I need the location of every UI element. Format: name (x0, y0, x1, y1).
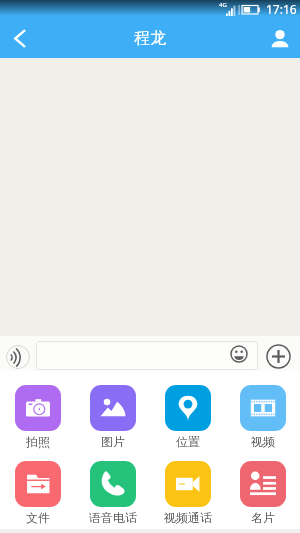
button[interactable]: 视频 (225, 385, 300, 449)
staticText: 视频通话 (164, 510, 212, 525)
staticText: 4G (219, 1, 227, 9)
staticText: 视频 (251, 434, 275, 449)
button[interactable] (36, 341, 258, 370)
staticText: 程龙 (134, 28, 166, 48)
button[interactable]: Voice input (6, 345, 30, 369)
staticText: 17:16 (266, 1, 297, 17)
button[interactable]: Emoji (229, 344, 249, 364)
button[interactable]: 视频通话 (150, 461, 225, 525)
staticText: 语音电话 (89, 510, 137, 525)
button[interactable]: More options (265, 343, 291, 369)
button[interactable]: Back (0, 18, 40, 58)
button[interactable]: 位置 (150, 385, 225, 449)
staticText: 图片 (101, 434, 125, 449)
staticText: 文件 (26, 510, 50, 525)
button[interactable]: Profile (260, 18, 300, 58)
staticText: 名片 (251, 510, 275, 525)
button[interactable]: 语音电话 (75, 461, 150, 525)
staticText: 拍照 (26, 434, 50, 449)
button[interactable]: 文件 (0, 461, 75, 525)
button[interactable]: 名片 (225, 461, 300, 525)
button[interactable]: 图片 (75, 385, 150, 449)
staticText: 位置 (176, 434, 200, 449)
button[interactable]: 拍照 (0, 385, 75, 449)
